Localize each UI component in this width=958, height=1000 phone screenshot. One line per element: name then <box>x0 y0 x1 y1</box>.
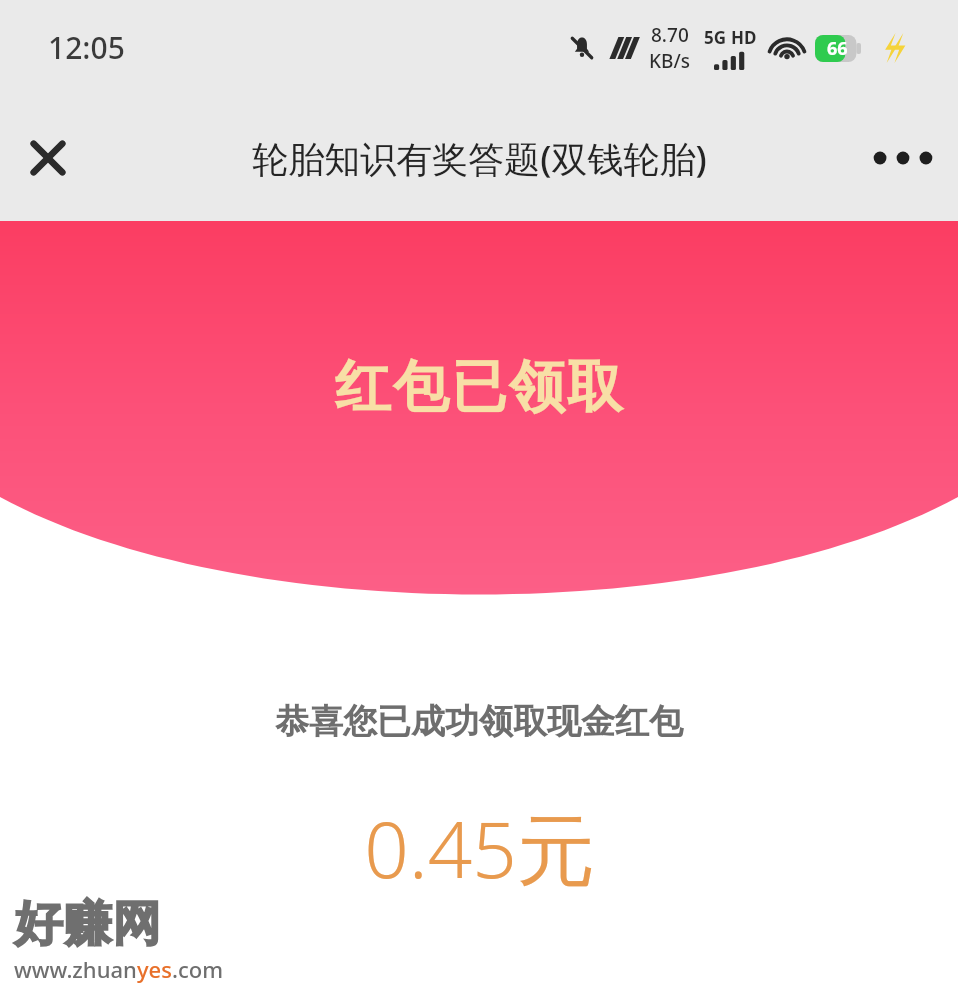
staticText: 轮胎知识有奖答题(双钱轮胎) <box>252 134 707 183</box>
staticText: 0.45元 <box>364 795 595 902</box>
staticText: www.zhuan <box>14 954 137 984</box>
staticText: 好赚网 <box>14 894 161 954</box>
staticText: 66 <box>827 36 848 61</box>
staticText: 5G <box>704 26 727 49</box>
staticText: yes <box>137 954 172 984</box>
button[interactable]: Close <box>0 110 96 206</box>
staticText: 8.70 <box>651 22 689 48</box>
staticText: KB/s <box>649 48 690 74</box>
button[interactable]: More options <box>848 103 958 213</box>
staticText: 12:05 <box>48 27 125 68</box>
staticText: 恭喜您已成功领取现金红包 <box>275 700 683 743</box>
staticText: HD <box>731 26 757 49</box>
staticText: 红包已领取 <box>334 352 624 423</box>
staticText: .com <box>172 954 224 984</box>
